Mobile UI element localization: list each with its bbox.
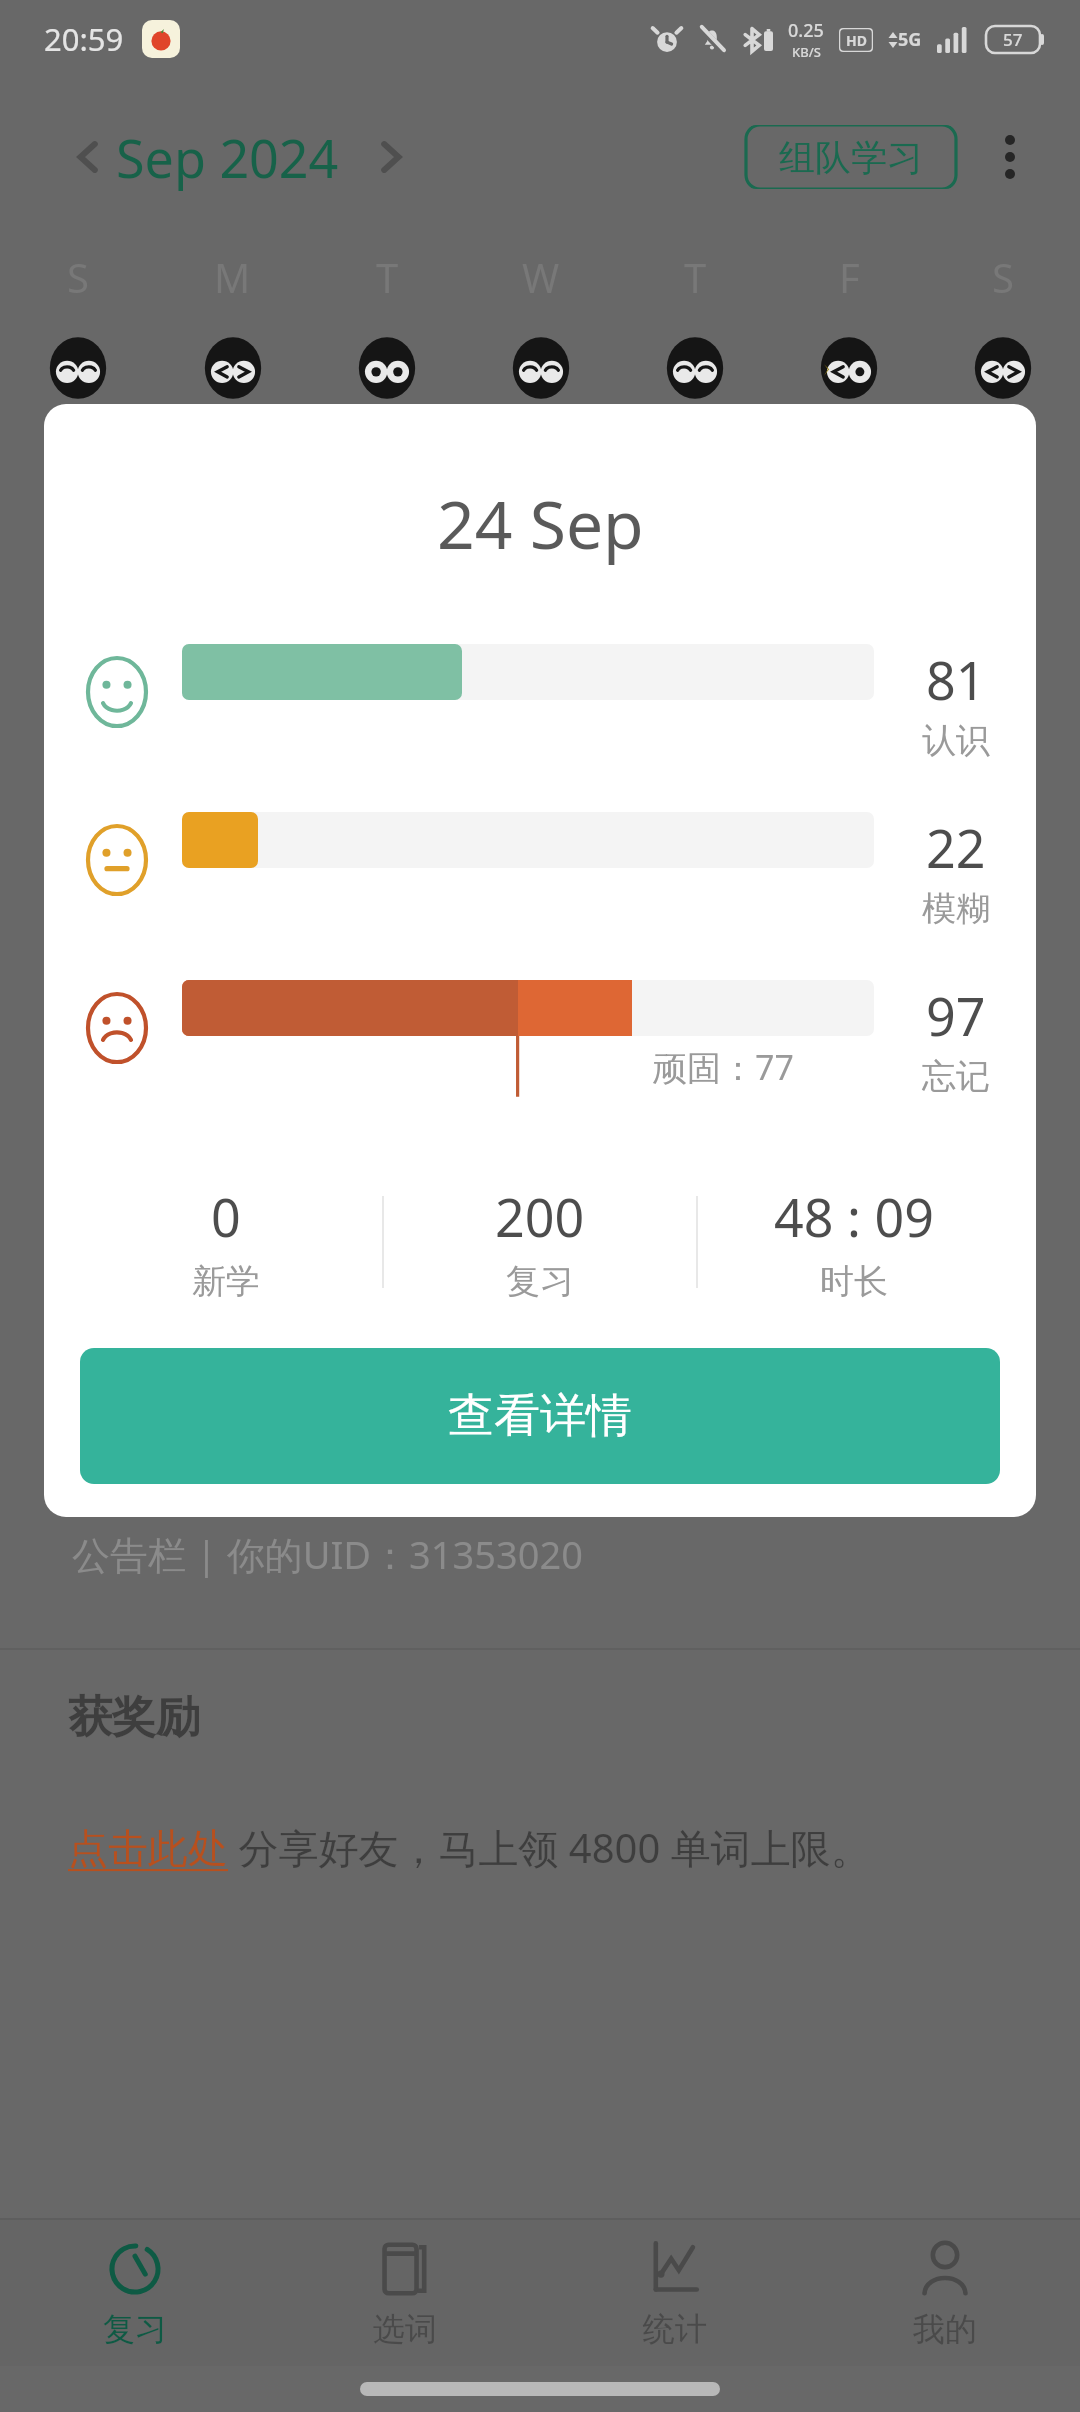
button[interactable]: 点击此处 (68, 1823, 228, 1873)
button[interactable]: 复习 (0, 2220, 270, 2366)
staticText: 时长 (820, 1260, 888, 1303)
staticText: 模糊 (922, 887, 990, 930)
staticText: 0.25 (788, 18, 824, 43)
staticText: S (67, 250, 89, 304)
staticText: 分享好友，马上领 4800 单词上限。 (228, 1820, 871, 1875)
staticText: 复习 (103, 2309, 167, 2349)
staticText: 24 Sep (437, 478, 644, 568)
staticText: T (684, 250, 707, 304)
staticText: S (992, 250, 1014, 304)
button[interactable]: 我的 (810, 2220, 1080, 2366)
staticText: 选词 (373, 2309, 437, 2349)
staticText: 统计 (643, 2309, 707, 2349)
button[interactable]: 选词 (270, 2220, 540, 2366)
staticText: 复习 (506, 1260, 574, 1303)
staticText: 顽固：77 (653, 1044, 794, 1090)
staticText: W (522, 250, 560, 304)
button[interactable]: 统计 (540, 2220, 810, 2366)
button[interactable]: Next month (363, 129, 419, 185)
staticText: 200 (495, 1181, 585, 1252)
staticText: 57 (1003, 28, 1023, 51)
staticText: 20:59 (44, 18, 124, 60)
button[interactable]: More options (980, 127, 1040, 187)
staticText: T (376, 250, 399, 304)
staticText: 48 : 09 (774, 1181, 934, 1252)
staticText: 公告栏 | 你的UID：31353020 (72, 1528, 583, 1580)
staticText: Sep 2024 (116, 122, 339, 193)
button[interactable]: Previous month (60, 129, 116, 185)
staticText: 5G (898, 27, 922, 52)
button[interactable]: 查看详情 (80, 1348, 1000, 1484)
button[interactable]: 0 (70, 1181, 382, 1303)
staticText: 查看详情 (448, 1387, 632, 1445)
staticText: HD (846, 31, 867, 50)
button[interactable]: 组队学习 (744, 125, 958, 189)
staticText: 97 (926, 980, 986, 1051)
staticText: 81 (926, 644, 986, 715)
staticText: 认识 (922, 719, 990, 762)
staticText: 我的 (913, 2309, 977, 2349)
staticText: 组队学习 (779, 135, 923, 180)
button[interactable]: 48 : 09 (698, 1181, 1010, 1303)
staticText: M (214, 250, 251, 304)
button[interactable]: 200 (384, 1181, 696, 1303)
staticText: 新学 (192, 1260, 260, 1303)
staticText: 0 (211, 1181, 241, 1252)
staticText: 22 (926, 812, 986, 883)
staticText: 忘记 (922, 1055, 990, 1098)
staticText: 获奖励 (68, 1690, 200, 1745)
staticText: KB/S (792, 43, 821, 61)
staticText: F (839, 250, 860, 304)
